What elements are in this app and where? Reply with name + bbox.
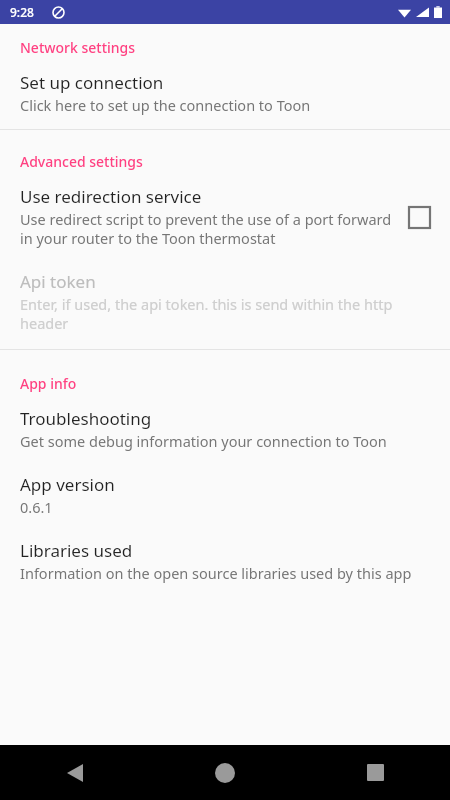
staticText: Information on the open source libraries… — [20, 563, 412, 583]
staticText: Network settings — [20, 38, 434, 57]
staticText: Libraries used — [20, 539, 133, 562]
staticText: App info — [20, 374, 434, 393]
staticText: Troubleshooting — [20, 407, 152, 430]
staticText: Api token — [20, 270, 96, 293]
staticText: Set up connection — [20, 71, 164, 94]
staticText: Enter, if used, the api token. this is s… — [20, 294, 422, 333]
staticText: Advanced settings — [20, 152, 434, 171]
button[interactable]: Recent apps — [300, 745, 450, 800]
button[interactable]: Troubleshooting — [0, 395, 450, 463]
button[interactable]: App version — [0, 463, 450, 529]
staticText: 0.6.1 — [20, 497, 53, 517]
button[interactable]: Use redirection service — [0, 173, 450, 260]
staticText: Get some debug information your connecti… — [20, 431, 387, 451]
staticText: 9:28 — [10, 4, 34, 20]
button[interactable]: Set up connection — [0, 59, 450, 129]
staticText: App version — [20, 473, 115, 496]
staticText: Use redirection service — [20, 185, 202, 208]
button[interactable]: Libraries used — [0, 529, 450, 595]
button[interactable]: Home — [150, 745, 300, 800]
staticText: Click here to set up the connection to T… — [20, 95, 311, 115]
button[interactable]: Back — [0, 745, 150, 800]
button: Api token — [0, 260, 450, 349]
button[interactable]: Use redirection service checkbox — [406, 204, 432, 230]
staticText: Use redirect script to prevent the use o… — [20, 209, 394, 248]
